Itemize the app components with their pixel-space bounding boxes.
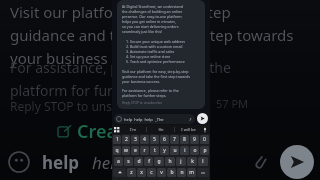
button[interactable]: o [190, 146, 199, 155]
button[interactable]: Voice input [202, 127, 208, 133]
button[interactable]: Send [280, 145, 314, 179]
button[interactable]: Attach [250, 152, 270, 172]
staticText: 5 [153, 136, 156, 143]
staticText: p [203, 147, 207, 154]
button[interactable]: I'm [120, 127, 146, 132]
button[interactable]: 8 [180, 135, 189, 144]
button[interactable]: Shift [113, 168, 126, 177]
staticText: e [134, 147, 137, 154]
button[interactable]: 7 [170, 135, 179, 144]
staticText: i [184, 147, 186, 154]
button[interactable]: c [147, 168, 156, 177]
button[interactable]: 2 [122, 135, 130, 144]
staticText: 6 [163, 136, 166, 143]
button[interactable]: k [187, 157, 197, 166]
button[interactable]: e [131, 146, 139, 155]
staticText: 57 PM [216, 96, 249, 111]
staticText: x [140, 169, 143, 176]
button[interactable]: j [176, 157, 186, 166]
button[interactable]: Backspace [197, 168, 209, 177]
button[interactable]: v [157, 168, 166, 177]
button[interactable]: t [150, 146, 159, 155]
button[interactable]: At Digital Storefront, we understand [117, 0, 205, 109]
staticText: For assistance, please refer to the [10, 58, 231, 77]
staticText: 3 [134, 136, 137, 143]
staticText: 3. Automate traffic and sales [126, 49, 175, 54]
staticText: 2. Build trust with a custom email [126, 44, 183, 49]
staticText: He [158, 127, 164, 132]
staticText: n [180, 169, 184, 176]
staticText: s [127, 158, 130, 165]
staticText: help [92, 151, 125, 174]
staticText: w [124, 147, 128, 154]
staticText: Visit our platform for easy, step-by-ste… [122, 69, 189, 74]
button[interactable]: 3 [131, 135, 139, 144]
staticText: guidance and take the first step towards [122, 74, 190, 79]
button[interactable]: r [140, 146, 149, 155]
staticText: m [189, 169, 194, 176]
button[interactable]: a [114, 157, 123, 166]
button[interactable]: 1 [113, 135, 121, 144]
button[interactable]: b [167, 168, 176, 177]
button[interactable]: Emoji [8, 151, 30, 173]
staticText: 4 [143, 136, 146, 143]
staticText: z [130, 169, 133, 176]
staticText: so you can start delivering orders [122, 24, 179, 29]
button[interactable]: Send [197, 113, 208, 124]
button[interactable]: y [160, 146, 169, 155]
button[interactable]: f [144, 157, 153, 166]
button[interactable]: d [134, 157, 143, 166]
button[interactable]: I will be [175, 127, 202, 132]
staticText: 4. Set up your online store [126, 54, 171, 59]
staticText: j [180, 158, 182, 165]
staticText: o [193, 147, 197, 154]
staticText: 1 [116, 136, 119, 143]
staticText: f [148, 158, 150, 165]
button[interactable]: s [124, 157, 133, 166]
button[interactable]: Create [58, 119, 135, 144]
staticText: 5. Track and optimize performance [126, 59, 185, 64]
staticText: r [143, 147, 146, 154]
staticText: v [160, 169, 163, 176]
button[interactable]: q [113, 146, 121, 155]
staticText: d [137, 158, 141, 165]
button[interactable]: 5 [150, 135, 159, 144]
staticText: 2 [125, 136, 128, 143]
staticText: 0 [203, 136, 206, 143]
button[interactable]: He [147, 127, 174, 132]
button[interactable]: n [177, 168, 186, 177]
staticText: c [150, 169, 153, 176]
staticText: 8 [183, 136, 186, 143]
button[interactable]: g [154, 157, 164, 166]
button[interactable]: 6 [160, 135, 169, 144]
button[interactable]: m [187, 168, 196, 177]
staticText: I will be [181, 127, 196, 132]
staticText: 1. Secure your unique web address [126, 39, 185, 44]
staticText: I'm [130, 127, 136, 132]
staticText: helps you get online in minutes, [122, 19, 176, 24]
staticText: help help help _The [124, 117, 164, 122]
button[interactable]: Keyboard options [114, 127, 120, 133]
staticText: Reply STOP to unsubscribe [122, 101, 162, 105]
staticText: At Digital Storefront, we understand [122, 4, 183, 9]
staticText: h [168, 158, 172, 165]
button[interactable]: i [180, 146, 189, 155]
button[interactable]: w [122, 146, 130, 155]
staticText: g [157, 158, 161, 165]
staticText: q [115, 147, 119, 154]
button[interactable]: 9 [190, 135, 199, 144]
button[interactable]: h [165, 157, 175, 166]
button[interactable]: 4 [140, 135, 149, 144]
staticText: y [163, 147, 166, 154]
button[interactable]: 0 [200, 135, 209, 144]
button[interactable]: x [137, 168, 146, 177]
staticText: Create [77, 119, 135, 144]
button[interactable]: help help help _The [114, 114, 195, 124]
staticText: your business success. [10, 48, 170, 68]
button[interactable]: Attach [188, 117, 193, 122]
button[interactable]: l [198, 157, 208, 166]
button[interactable]: z [127, 168, 136, 177]
button[interactable]: u [170, 146, 179, 155]
staticText: k [191, 158, 194, 165]
button[interactable]: p [200, 146, 209, 155]
